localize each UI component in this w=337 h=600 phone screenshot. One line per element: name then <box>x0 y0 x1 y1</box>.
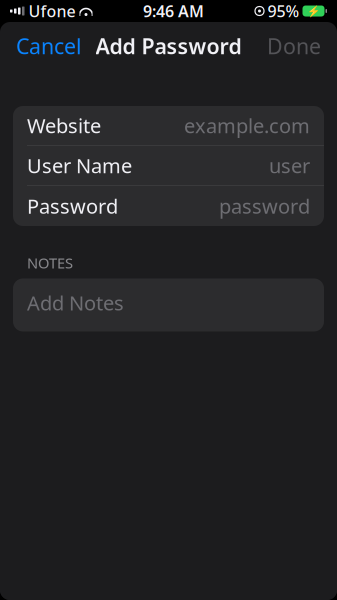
staticText: Cancel <box>16 32 82 60</box>
button[interactable]: Password <box>13 186 324 226</box>
button[interactable]: Add Notes <box>13 278 324 331</box>
staticText: 9:46 AM <box>143 0 204 22</box>
staticText: Ufone <box>28 0 75 22</box>
staticText: User Name <box>27 152 132 179</box>
button[interactable]: Done <box>251 22 337 70</box>
staticText: 95% <box>267 0 299 22</box>
staticText: Password <box>27 193 118 219</box>
staticText: user <box>269 152 310 179</box>
button[interactable]: Website <box>13 106 324 146</box>
staticText: ⚡ <box>307 5 320 17</box>
staticText: Add Notes <box>27 289 124 316</box>
staticText: NOTES <box>27 253 73 272</box>
button[interactable]: User Name <box>13 146 324 186</box>
staticText: example.com <box>184 112 310 139</box>
staticText: password <box>219 193 310 219</box>
button[interactable]: Cancel <box>0 22 98 70</box>
staticText: Website <box>27 112 101 139</box>
staticText: Done <box>267 32 321 60</box>
staticText: Add Password <box>95 32 241 60</box>
